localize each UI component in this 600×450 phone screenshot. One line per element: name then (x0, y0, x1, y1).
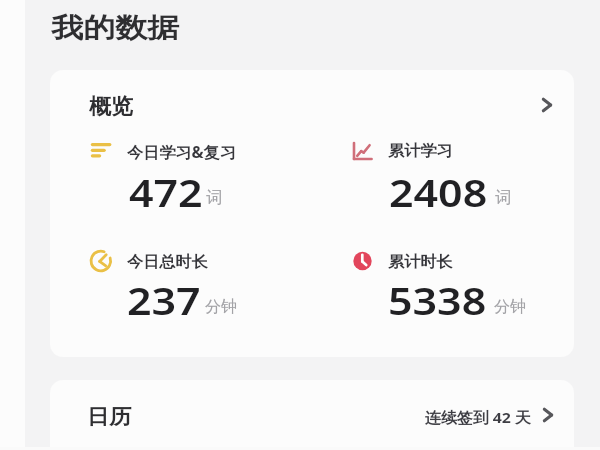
other: Open (541, 406, 555, 424)
staticText: 5338 (388, 274, 486, 326)
staticText: 今日总时长 (127, 252, 208, 272)
staticText: 今日学习&复习 (127, 141, 236, 162)
staticText: 连续签到 42 天 (425, 407, 531, 427)
staticText: 分钟 (205, 297, 237, 317)
staticText: 472 (129, 166, 204, 218)
staticText: 累计时长 (388, 252, 452, 272)
staticText: 概览 (89, 93, 133, 121)
staticText: 日历 (87, 404, 131, 430)
staticText: 分钟 (494, 297, 526, 317)
other: Open (540, 96, 554, 114)
staticText: 我的数据 (51, 11, 179, 45)
staticText: 237 (127, 274, 202, 326)
staticText: 词 (206, 188, 222, 208)
staticText: 词 (495, 188, 511, 208)
staticText: 2408 (389, 166, 487, 218)
staticText: 累计学习 (388, 141, 452, 161)
button[interactable]: 概览 (50, 70, 574, 140)
button[interactable]: 日历 (50, 380, 574, 450)
